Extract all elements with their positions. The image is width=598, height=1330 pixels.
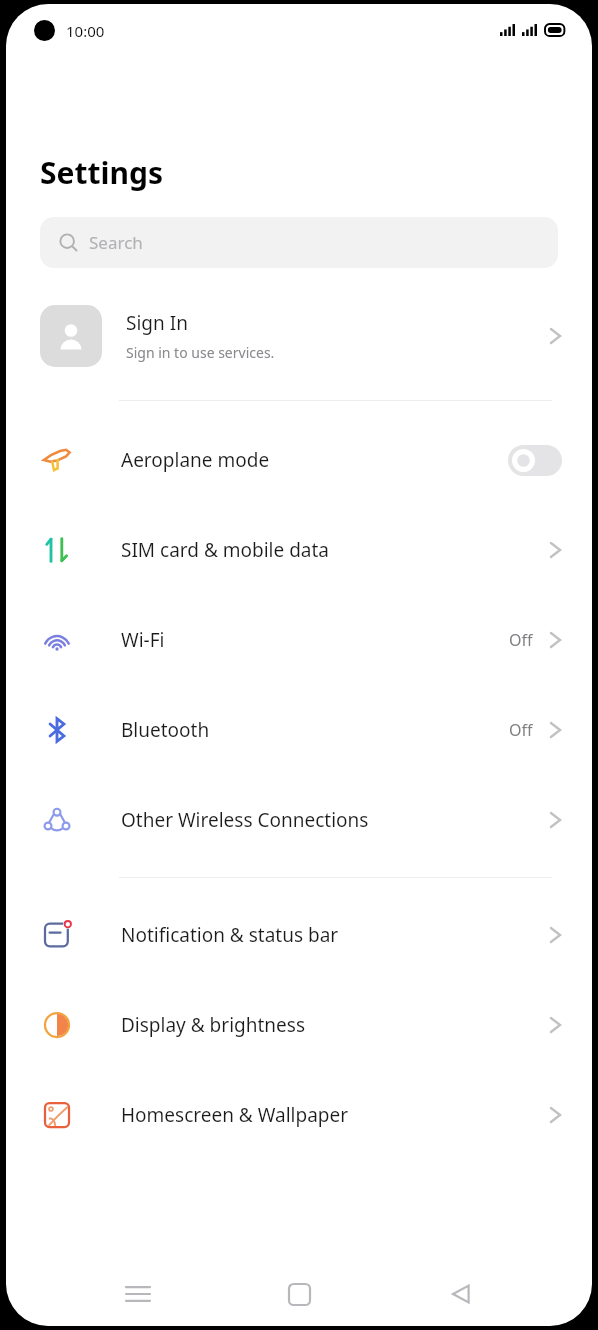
staticText: Off: [509, 719, 533, 741]
button[interactable]: SIM card & mobile data: [6, 505, 592, 595]
button[interactable]: Back: [431, 1264, 491, 1324]
staticText: SIM card & mobile data: [121, 537, 549, 563]
staticText: Sign in to use services.: [126, 343, 275, 362]
staticText: Wi-Fi: [121, 627, 509, 653]
staticText: Other Wireless Connections: [121, 807, 549, 833]
button[interactable]: Notification & status bar: [6, 890, 592, 980]
button[interactable]: Sign In: [6, 290, 592, 382]
button[interactable]: Display & brightness: [6, 980, 592, 1070]
button[interactable]: Bluetooth: [6, 685, 592, 775]
staticText: Aeroplane mode: [121, 447, 508, 473]
staticText: 10:00: [66, 21, 105, 41]
button[interactable]: Wi-Fi: [6, 595, 592, 685]
button[interactable]: Aeroplane mode toggle: [508, 445, 562, 476]
staticText: Bluetooth: [121, 717, 509, 743]
staticText: Settings: [40, 152, 163, 193]
staticText: Notification & status bar: [121, 922, 549, 948]
button[interactable]: Recents: [108, 1264, 168, 1324]
staticText: Search: [89, 231, 143, 254]
button[interactable]: Aeroplane mode: [6, 415, 592, 505]
button[interactable]: Search: [40, 217, 558, 268]
button[interactable]: Home: [269, 1264, 329, 1324]
button[interactable]: Other Wireless Connections: [6, 775, 592, 865]
staticText: Off: [509, 629, 533, 651]
staticText: Homescreen & Wallpaper: [121, 1102, 549, 1128]
staticText: Sign In: [126, 310, 188, 336]
staticText: Display & brightness: [121, 1012, 549, 1038]
button[interactable]: Homescreen & Wallpaper: [6, 1070, 592, 1160]
